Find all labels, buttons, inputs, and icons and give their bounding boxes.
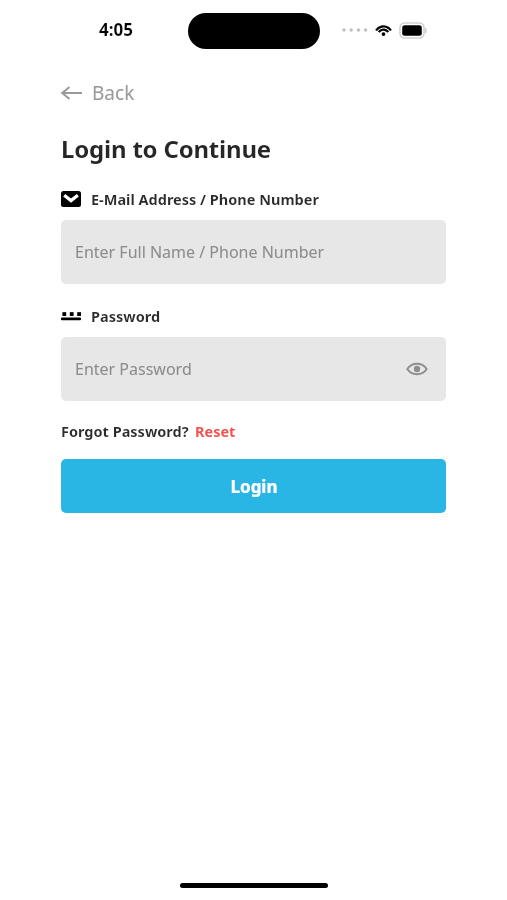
button[interactable]: Login	[61, 459, 446, 513]
staticText: 4:05	[99, 18, 133, 41]
staticText: Password	[91, 306, 161, 326]
button[interactable]: Enter Full Name / Phone Number	[61, 220, 446, 284]
button[interactable]: Show password	[402, 354, 432, 384]
button[interactable]: Reset	[195, 421, 236, 441]
button[interactable]: Enter Password	[61, 337, 446, 401]
button[interactable]: Back	[55, 76, 145, 110]
staticText: Enter Password	[75, 358, 192, 380]
staticText: Back	[92, 80, 135, 106]
staticText: Login to Continue	[61, 132, 271, 165]
staticText: E-Mail Address / Phone Number	[91, 189, 319, 209]
staticText: Forgot Password?	[61, 421, 189, 441]
staticText: Reset	[195, 421, 236, 441]
staticText: Login	[230, 475, 278, 498]
staticText: Enter Full Name / Phone Number	[75, 241, 325, 263]
